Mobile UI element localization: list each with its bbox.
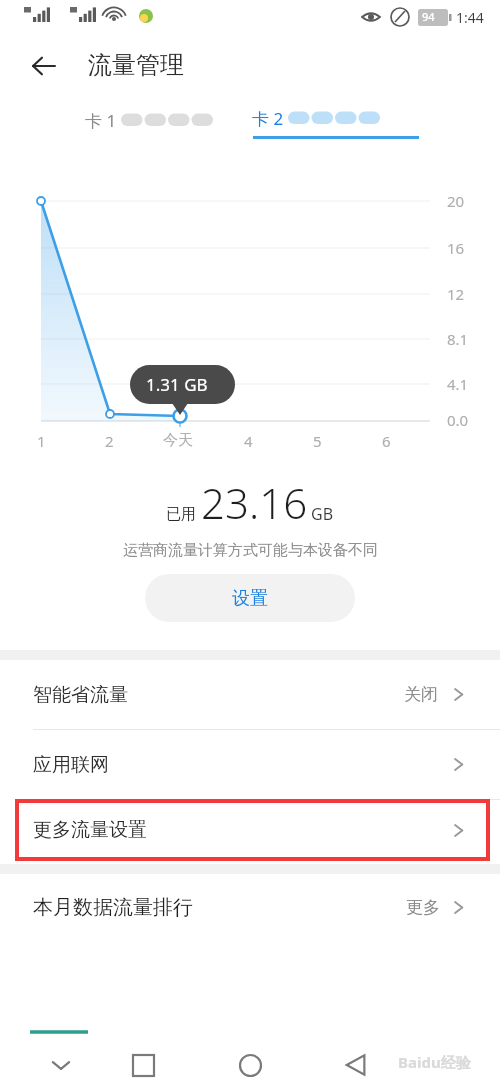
- staticText: 1: [37, 431, 46, 451]
- button[interactable]: 更多流量设置: [0, 800, 500, 860]
- staticText: 16: [447, 238, 465, 258]
- staticText: GB: [311, 503, 334, 525]
- staticText: 更多: [406, 897, 440, 918]
- button[interactable]: 设置: [145, 574, 355, 622]
- button[interactable]: 卡 2: [252, 100, 418, 139]
- staticText: 6: [382, 431, 391, 451]
- staticText: 关闭: [404, 684, 438, 705]
- button[interactable]: 本月数据流量排行: [0, 874, 500, 940]
- staticText: 1.31 GB: [146, 373, 208, 396]
- staticText: 更多流量设置: [33, 818, 147, 842]
- staticText: 今天: [163, 431, 193, 450]
- staticText: 4.1: [447, 374, 469, 394]
- staticText: 5: [313, 431, 322, 451]
- button[interactable]: Recent apps: [118, 1040, 168, 1084]
- staticText: 2: [105, 431, 114, 451]
- staticText: 8.1: [447, 329, 469, 349]
- button[interactable]: 卡 1: [85, 100, 213, 140]
- button[interactable]: 应用联网: [0, 730, 500, 799]
- staticText: 23.16: [201, 474, 308, 531]
- staticText: 94: [422, 9, 435, 24]
- button[interactable]: Home: [225, 1040, 275, 1084]
- staticText: 0.0: [447, 410, 469, 430]
- staticText: 应用联网: [33, 753, 109, 777]
- button[interactable]: 智能省流量: [0, 660, 500, 729]
- staticText: 已用: [166, 505, 196, 524]
- staticText: 20: [447, 191, 465, 211]
- staticText: 设置: [232, 587, 268, 610]
- staticText: 运营商流量计算方式可能与本设备不同: [123, 541, 378, 560]
- button[interactable]: Back: [22, 44, 66, 88]
- staticText: 1:44: [456, 8, 484, 27]
- staticText: 卡 2: [252, 107, 288, 130]
- button[interactable]: Back: [331, 1040, 381, 1084]
- button[interactable]: Collapse: [36, 1040, 86, 1084]
- staticText: Baidu经验: [398, 1052, 471, 1072]
- staticText: 流量管理: [88, 50, 184, 80]
- staticText: 12: [447, 284, 465, 304]
- staticText: 智能省流量: [33, 683, 128, 707]
- staticText: 卡 1: [85, 109, 121, 132]
- staticText: 4: [244, 431, 253, 451]
- staticText: 本月数据流量排行: [33, 895, 193, 920]
